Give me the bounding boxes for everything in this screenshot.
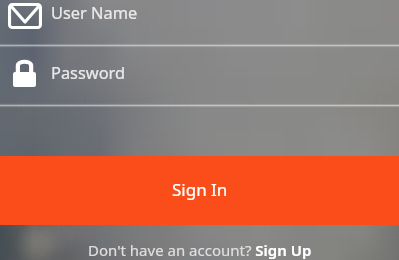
staticText: Sign In: [172, 178, 228, 201]
button[interactable]: Sign In: [0, 156, 399, 225]
button[interactable]: Password: [0, 46, 399, 105]
staticText: Password: [51, 61, 126, 83]
other: Password: [13, 60, 36, 87]
staticText: User Name: [51, 1, 138, 23]
button[interactable]: User name: [0, 0, 399, 45]
button[interactable]: Don't have an account? Sign Up: [88, 240, 312, 260]
other: User name: [8, 3, 42, 29]
